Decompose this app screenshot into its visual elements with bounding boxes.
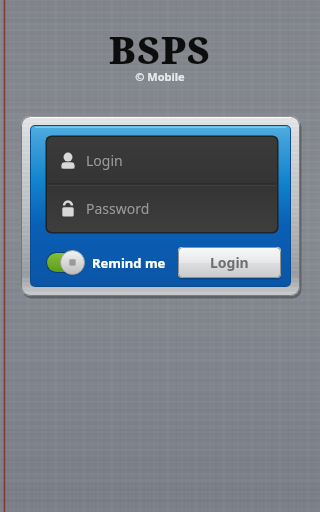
button[interactable]: Password — [47, 185, 277, 232]
button[interactable]: Login — [47, 137, 277, 184]
staticText: © Mobile — [135, 69, 185, 84]
staticText: Login — [210, 253, 249, 272]
staticText: Remind me — [92, 254, 166, 272]
button[interactable]: Login — [178, 247, 281, 278]
staticText: BSPS — [109, 24, 211, 74]
staticText: Password — [86, 199, 150, 218]
button[interactable]: Remind me toggle, on — [45, 250, 170, 276]
staticText: Login — [86, 151, 123, 170]
